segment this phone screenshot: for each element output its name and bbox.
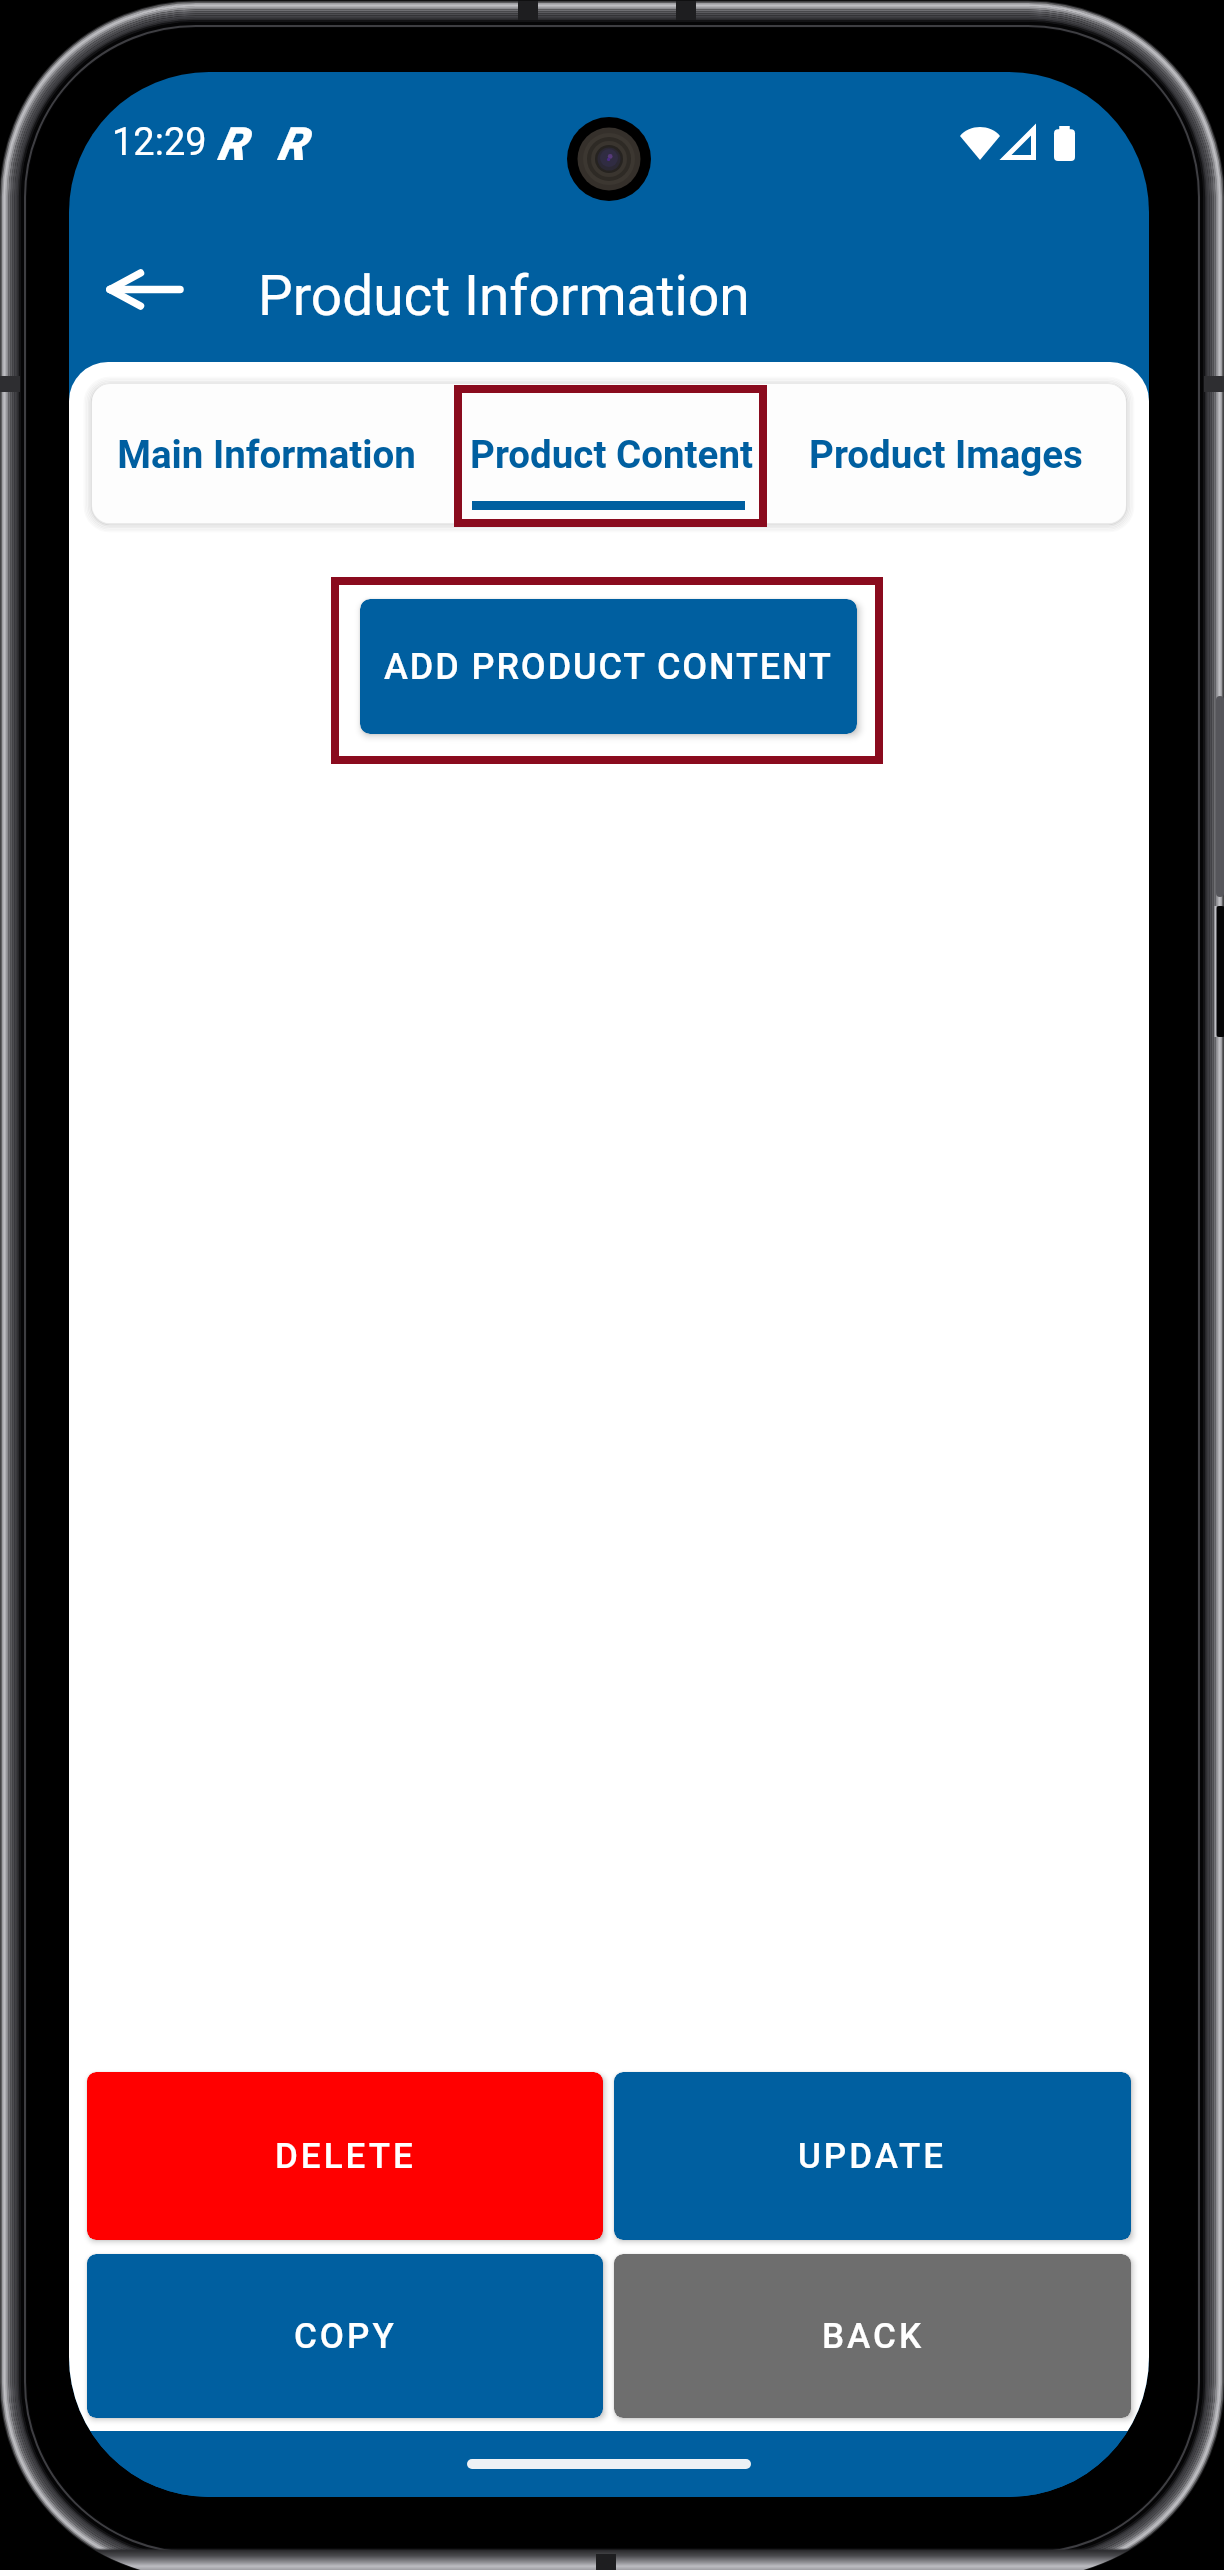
button[interactable]: BACK xyxy=(614,2254,1131,2418)
staticText: COPY xyxy=(294,2316,397,2357)
button[interactable]: UPDATE xyxy=(614,2072,1131,2240)
button[interactable]: DELETE xyxy=(87,2072,603,2240)
staticText: R xyxy=(277,117,307,171)
button[interactable]: COPY xyxy=(87,2254,603,2418)
button[interactable]: ADD PRODUCT CONTENT xyxy=(360,599,857,734)
staticText: Product Images xyxy=(809,432,1083,477)
button[interactable]: Product Content xyxy=(436,384,781,523)
staticText: UPDATE xyxy=(798,2136,947,2177)
staticText: Product Information xyxy=(258,264,750,328)
staticText: Product Content xyxy=(470,432,753,477)
button[interactable]: Back xyxy=(82,242,204,336)
button[interactable]: Product Images xyxy=(781,384,1126,523)
staticText: ADD PRODUCT CONTENT xyxy=(384,646,833,688)
staticText: R xyxy=(217,117,247,171)
staticText: DELETE xyxy=(275,2136,416,2177)
staticText: 12:29 xyxy=(112,120,207,165)
button[interactable]: Main Information xyxy=(92,384,436,523)
staticText: BACK xyxy=(822,2316,924,2357)
staticText: Main Information xyxy=(117,432,416,477)
